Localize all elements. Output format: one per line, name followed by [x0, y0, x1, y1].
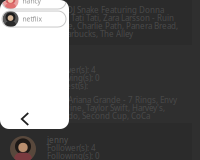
staticText: El Dorado, Dorado, Second Cup, CoCa — [10, 111, 150, 121]
staticText: Sweet Dreams, Ariana Grande - 7 Rings, E… — [10, 95, 177, 105]
staticText: Lil Uzi Vert, 6ix9ine, Taylor Swift, Har… — [10, 103, 165, 113]
staticText: Following(s): 0 — [47, 151, 100, 160]
staticText: nancy — [22, 0, 40, 5]
button[interactable]: Back — [11, 106, 39, 132]
staticText: Interest(s): — [47, 81, 88, 91]
staticText: Following(s): 0 — [47, 73, 100, 83]
staticText: Follower(s): 4 — [47, 65, 96, 75]
staticText: jenny — [47, 135, 68, 145]
button[interactable]: jenny — [0, 123, 192, 160]
button[interactable]: nancy — [2, 0, 66, 9]
staticText: Interest(s): — [47, 159, 88, 160]
staticText: Interest(s): — [47, 0, 88, 1]
button[interactable]: sonia — [0, 45, 192, 123]
button[interactable]: netflix — [2, 11, 66, 27]
staticText: Follower(s): 4 — [47, 143, 96, 153]
button[interactable]: annie — [0, 0, 192, 49]
staticText: Missy Elliott & I, Tati Tati, Zara Larss… — [10, 13, 174, 23]
staticText: Tim Hortons, Starbucks, The Alley — [10, 29, 133, 39]
staticText: Ariana Grande, DJ Snake Featuring Donna — [10, 5, 164, 15]
staticText: My Life, Chipotle, Charlie Path, Panera … — [10, 21, 178, 31]
staticText: netflix — [22, 15, 42, 23]
